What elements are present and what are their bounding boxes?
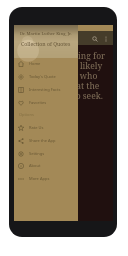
button[interactable]: More options <box>100 33 111 44</box>
staticText: Interesting Facts <box>29 87 61 92</box>
staticText: If you are looking for the one who is li… <box>19 50 106 101</box>
button[interactable]: Search <box>89 33 100 44</box>
staticText: Today's Quote <box>29 74 56 79</box>
button[interactable]: About <box>14 159 78 172</box>
button[interactable]: Interesting Facts <box>14 83 78 96</box>
staticText: Rate Us <box>29 125 44 130</box>
button[interactable]: Rate Us <box>14 121 78 134</box>
staticText: More Apps <box>29 176 50 181</box>
staticText: Collection of Quotes <box>21 40 71 47</box>
staticText: About <box>29 163 41 168</box>
button[interactable]: More Apps <box>14 172 78 185</box>
staticText: Settings <box>29 151 45 156</box>
staticText: Options <box>19 112 34 117</box>
button[interactable]: Settings <box>14 147 78 160</box>
button[interactable]: Share the App <box>14 134 78 147</box>
button[interactable]: Home <box>14 57 78 70</box>
button[interactable]: Favorites <box>14 96 78 109</box>
staticText: Favorites <box>29 100 47 105</box>
staticText: Dr. Martin Luther King, Jr. <box>20 31 72 37</box>
button[interactable]: Today's Quote <box>14 70 78 83</box>
staticText: Share the App <box>29 138 56 143</box>
staticText: Home <box>29 61 41 66</box>
